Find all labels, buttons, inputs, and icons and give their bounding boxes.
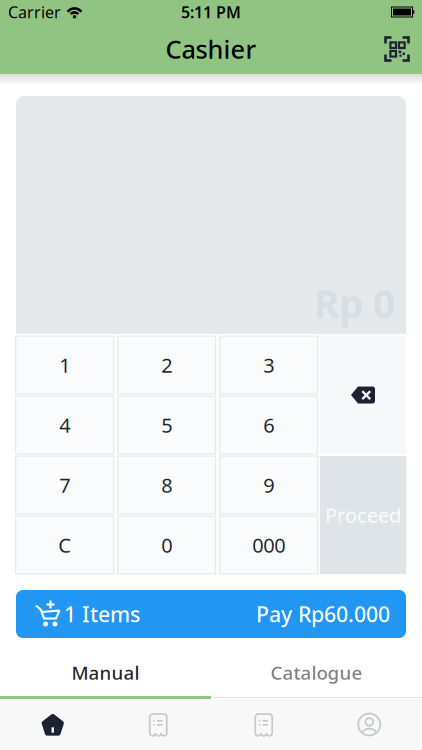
staticText: 3 (263, 352, 274, 378)
button[interactable]: 8 (118, 456, 216, 514)
staticText: Pay Rp60.000 (256, 600, 390, 628)
button[interactable]: Delete (320, 336, 406, 454)
button[interactable]: 7 (16, 456, 114, 514)
button[interactable]: 3 (220, 336, 318, 394)
button[interactable]: Scan QR code (384, 36, 422, 62)
staticText: 4 (59, 412, 70, 438)
staticText: 5 (161, 412, 172, 438)
button[interactable]: Manual (0, 656, 211, 696)
button[interactable]: 4 (16, 396, 114, 454)
button[interactable]: 2 (118, 336, 216, 394)
button[interactable]: 6 (220, 396, 318, 454)
staticText: 2 (161, 352, 172, 378)
button[interactable]: C (16, 516, 114, 574)
staticText: C (58, 532, 71, 558)
button[interactable]: Home (0, 699, 105, 750)
staticText: 0 (161, 532, 172, 558)
staticText: Catalogue (270, 660, 362, 685)
button[interactable]: Catalogue (211, 656, 422, 696)
staticText: 9 (263, 472, 274, 498)
staticText: 8 (161, 472, 172, 498)
staticText: Manual (71, 660, 139, 685)
button[interactable]: Proceed (320, 456, 406, 574)
button[interactable]: 000 (220, 516, 318, 574)
staticText: 1 Items (64, 600, 140, 628)
staticText: Carrier (8, 1, 61, 23)
button[interactable]: 1 Items (16, 590, 406, 638)
button[interactable]: 0 (118, 516, 216, 574)
button[interactable]: 1 (16, 336, 114, 394)
staticText: Rp 0 (314, 278, 395, 329)
staticText: 5:11 PM (181, 1, 241, 23)
staticText: 000 (252, 532, 285, 558)
button[interactable]: History (211, 699, 316, 750)
button[interactable]: 9 (220, 456, 318, 514)
button[interactable]: Orders (105, 699, 211, 750)
staticText: Cashier (165, 32, 256, 66)
button[interactable]: Profile (316, 699, 422, 750)
staticText: 1 (59, 352, 70, 378)
staticText: Proceed (325, 502, 401, 528)
staticText: 7 (59, 472, 70, 498)
button[interactable]: 5 (118, 396, 216, 454)
staticText: 6 (263, 412, 274, 438)
